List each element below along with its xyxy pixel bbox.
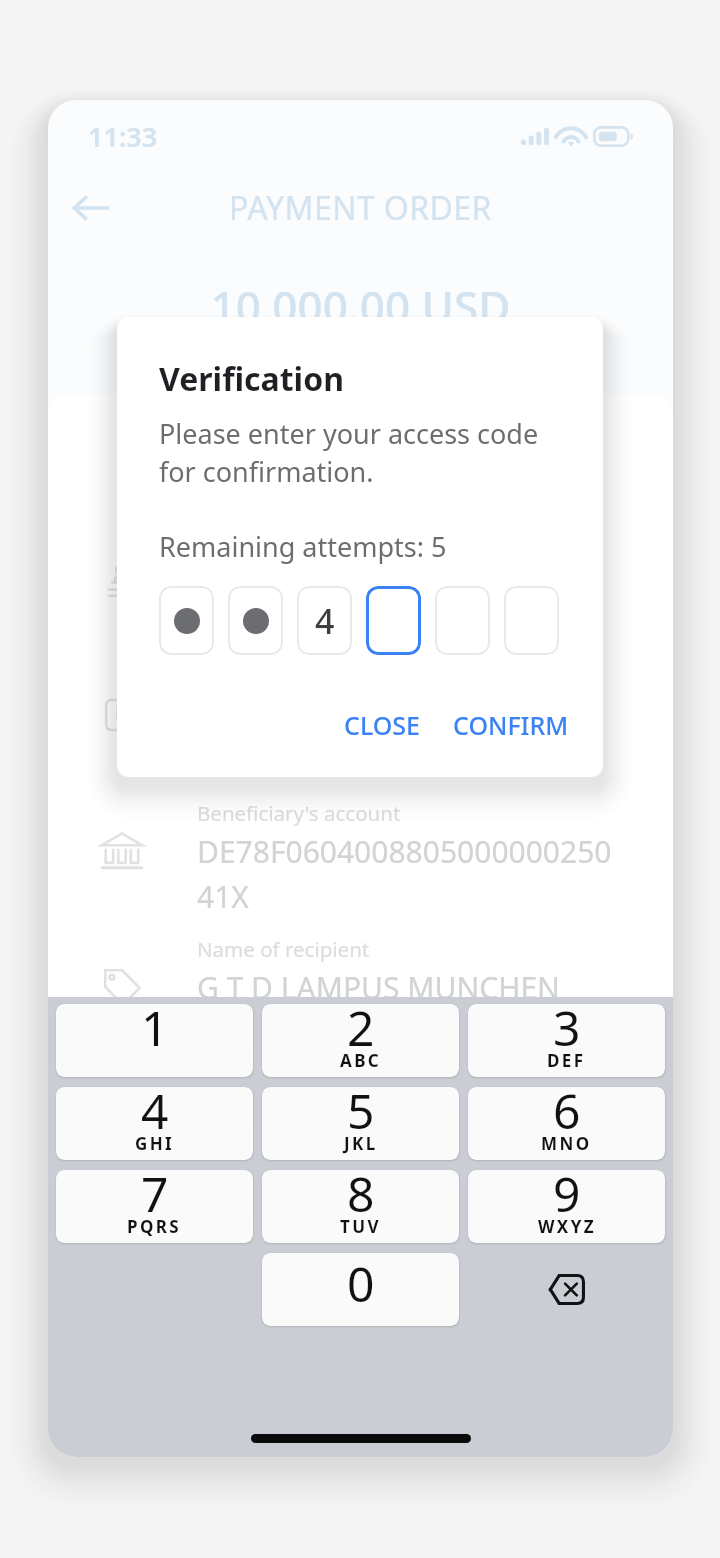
staticText: 0 [347, 1253, 375, 1316]
staticText: 7 [141, 1170, 169, 1226]
button[interactable]: Backspace [468, 1253, 665, 1326]
button[interactable]: 6 [468, 1087, 665, 1160]
button[interactable]: Payment details [48, 663, 673, 736]
button[interactable]: Beneficiary's account [48, 799, 673, 917]
staticText: 5 [347, 1087, 375, 1143]
staticText: 8 [347, 1170, 375, 1226]
staticText: Invoice payment [197, 559, 431, 600]
staticText: 4 [315, 598, 335, 644]
button[interactable]: Back [62, 179, 120, 237]
staticText: Purpose of payment [197, 527, 393, 555]
staticText: 3 [553, 1004, 581, 1060]
staticText: JKL [344, 1132, 378, 1155]
button[interactable]: 4 [56, 1087, 253, 1160]
staticText: DEF [547, 1049, 586, 1072]
button[interactable]: 3 [468, 1004, 665, 1077]
staticText: PQRS [127, 1215, 182, 1238]
staticText: Please enter your access code for confir… [159, 415, 539, 490]
staticText: MNO [541, 1132, 592, 1155]
button[interactable]: 8 [262, 1170, 459, 1243]
staticText: PAYMENT ORDER [229, 186, 492, 230]
button[interactable]: 0 [262, 1253, 459, 1326]
staticText: Beneficiary's account [197, 799, 401, 827]
staticText: Verification [159, 357, 344, 401]
button[interactable]: 7 [56, 1170, 253, 1243]
staticText: G T D LAMPUS MUNCHEN [197, 967, 560, 1006]
button[interactable] [504, 586, 559, 655]
button[interactable] [366, 586, 421, 655]
staticText: 9 [553, 1170, 581, 1226]
staticText: DE78F0604008805000000250 41X [197, 831, 612, 917]
staticText: 11:33 [88, 118, 158, 155]
staticText: CONFIRM [453, 708, 569, 742]
staticText: ABC [340, 1049, 382, 1072]
button[interactable] [159, 586, 214, 655]
button[interactable] [228, 586, 283, 655]
staticText: 4 [141, 1087, 169, 1143]
button[interactable]: 5 [262, 1087, 459, 1160]
staticText: Remaining attempts: 5 [159, 528, 447, 565]
button[interactable]: 9 [468, 1170, 665, 1243]
staticText: 6 [553, 1087, 581, 1143]
button[interactable]: 2 [262, 1004, 459, 1077]
button[interactable]: 4 [297, 586, 352, 655]
staticText: Name of recipient [197, 935, 370, 963]
staticText: 10 000.00 USD [48, 276, 673, 336]
staticText: WXYZ [538, 1215, 596, 1238]
staticText: GHI [135, 1132, 175, 1155]
staticText: TUV [340, 1215, 381, 1238]
button[interactable]: Name of recipient [48, 935, 673, 1006]
button[interactable]: CLOSE [332, 698, 433, 752]
staticText: 2 [347, 1004, 375, 1060]
staticText: 1 [141, 1004, 169, 1060]
button[interactable] [435, 586, 490, 655]
staticText: CLOSE [344, 708, 421, 742]
button[interactable]: CONFIRM [441, 698, 581, 752]
button[interactable]: Purpose of payment [48, 527, 673, 600]
button[interactable]: 1 [56, 1004, 253, 1077]
staticText: Invoice 2021/11 [197, 695, 421, 736]
